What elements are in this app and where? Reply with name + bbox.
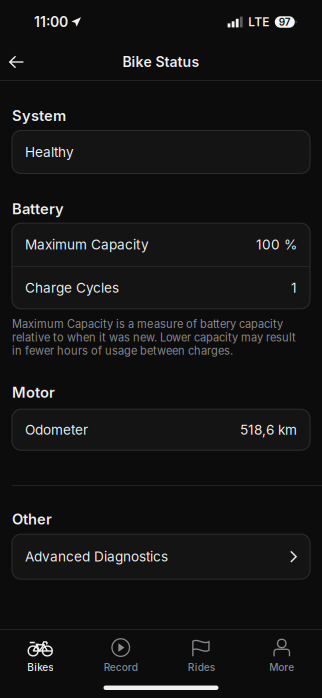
staticText: 100 % [256,236,297,253]
staticText: Record [104,661,138,673]
staticText: Advanced Diagnostics [25,548,168,565]
button[interactable]: Back [0,46,38,78]
staticText: Rides [188,661,215,673]
staticText: System [12,107,66,124]
button[interactable]: Bikes [0,630,80,676]
staticText: Maximum Capacity is a measure of battery… [12,317,296,357]
staticText: LTE [248,15,269,29]
staticText: Healthy [25,144,74,160]
staticText: 11:00 [34,13,68,30]
staticText: 97 [279,16,291,28]
staticText: 518,6 km [240,421,297,438]
staticText: Maximum Capacity [25,236,149,253]
staticText: 1 [291,280,297,296]
button[interactable]: Record [80,630,161,676]
staticText: Battery [12,200,64,218]
staticText: More [269,661,294,673]
staticText: Bikes [27,661,53,673]
staticText: Charge Cycles [25,280,119,296]
staticText: Bike Status [122,53,199,70]
button[interactable]: More [241,630,322,676]
button[interactable]: Rides [161,630,241,676]
button[interactable]: Advanced Diagnostics [0,534,322,579]
staticText: Odometer [25,421,88,438]
staticText: Other [12,510,52,528]
staticText: Motor [12,383,55,401]
